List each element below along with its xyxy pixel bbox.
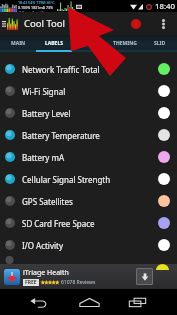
- staticText: 18:40: [155, 1, 175, 12]
- staticText: THEMING: [113, 40, 137, 47]
- button[interactable]: Back: [13, 289, 63, 315]
- staticText: 18:43 54% 779M 36°C: [18, 0, 55, 5]
- button[interactable]: SLID: [142, 35, 177, 52]
- staticText: FREE: [25, 279, 37, 286]
- staticText: Cool Tool: [24, 17, 65, 30]
- button[interactable]: SD Card Free Space: [0, 212, 177, 234]
- button[interactable]: Battery Level: [0, 102, 177, 124]
- button[interactable]: Cellular Signal Strength: [0, 168, 177, 190]
- staticText: 61078 Reviews: [61, 279, 96, 286]
- button[interactable]: GPS Satellites: [0, 190, 177, 212]
- staticText: Wi-Fi Signal: [22, 86, 66, 97]
- button[interactable]: Install: [137, 269, 152, 284]
- button[interactable]: GAUGES: [72, 35, 107, 52]
- staticText: SD Card Free Space: [22, 218, 95, 229]
- staticText: I/O Activity: [22, 240, 64, 251]
- button[interactable]: Wi-Fi Signal: [0, 80, 177, 102]
- staticText: LABELS: [45, 40, 63, 47]
- staticText: iTriage Health: [23, 268, 69, 278]
- button[interactable]: More options: [150, 12, 177, 35]
- button[interactable]: Battery Temperature: [0, 124, 177, 146]
- button[interactable]: Home: [64, 289, 114, 315]
- staticText: dl 0 cpu 2 net 9: [18, 10, 44, 12]
- button[interactable]: I/O Activity: [0, 234, 177, 256]
- staticText: Battery Level: [22, 108, 71, 119]
- button[interactable]: Navigation drawer: [0, 12, 7, 35]
- button[interactable]: MAIN: [0, 35, 36, 52]
- staticText: MAIN: [11, 40, 26, 47]
- staticText: GAUGES: [79, 40, 100, 47]
- button[interactable]: Battery mA: [0, 146, 177, 168]
- staticText: Cellular Signal Strength: [22, 174, 111, 185]
- button[interactable]: THEMING: [107, 35, 142, 52]
- staticText: 0.100% 1831mA 73%: [18, 5, 54, 10]
- staticText: SLID: [154, 40, 166, 47]
- button[interactable]: LABELS: [36, 35, 72, 52]
- staticText: Network Traffic Total: [22, 64, 100, 75]
- staticText: GPS Satellites: [22, 196, 73, 207]
- button[interactable]: Network Traffic Total: [0, 58, 177, 80]
- button[interactable]: Record: [122, 12, 150, 35]
- button[interactable]: Recent apps: [112, 289, 162, 315]
- staticText: Battery mA: [22, 152, 65, 163]
- staticText: Battery Temperature: [22, 130, 100, 141]
